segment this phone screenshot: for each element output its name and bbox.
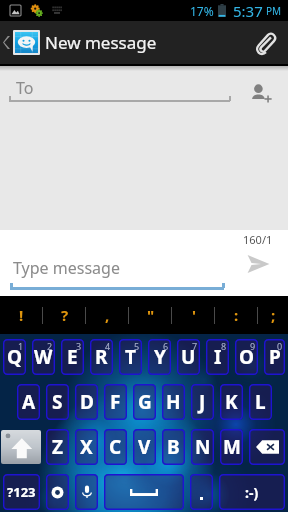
staticText: L [255,389,266,415]
staticText: E [67,344,78,370]
staticText: M [223,434,241,460]
button[interactable]: U [177,339,200,375]
staticText: :-) [245,483,259,502]
staticText: T [125,344,136,370]
button[interactable]: E [61,339,84,375]
button[interactable]: Space [104,474,184,510]
staticText: I [214,344,222,370]
button[interactable]: W [32,339,55,375]
button[interactable]: Z [46,429,69,465]
button[interactable]: Y [148,339,171,375]
button[interactable]: Attach [242,21,288,64]
button[interactable]: M [220,429,243,465]
button[interactable]: Q [3,339,26,375]
staticText: Z [52,434,64,460]
button[interactable]: : [215,296,258,334]
staticText: 9 [250,340,256,352]
button[interactable]: " [129,296,172,334]
button[interactable]: K [220,384,243,420]
button[interactable]: Send [234,244,282,284]
staticText: 0 [277,340,283,352]
staticText: ' [192,305,196,325]
staticText: O [239,344,255,370]
button[interactable]: P [264,339,285,375]
staticText: PM [266,4,282,18]
button[interactable]: R [90,339,113,375]
staticText: Y [154,344,166,370]
staticText: N [195,434,211,460]
staticText: , [105,305,110,325]
staticText: To [16,77,34,99]
staticText: 5 [134,340,140,352]
staticText: P [269,344,281,370]
button[interactable]: , [86,296,129,334]
button[interactable]: Backspace [249,429,285,465]
button[interactable]: Navigate up [0,21,40,64]
button[interactable]: ' [172,296,215,334]
staticText: F [110,389,121,415]
staticText: ; [271,305,276,325]
staticText: : [234,305,239,325]
button[interactable]: C [104,429,127,465]
staticText: 4 [105,340,111,352]
staticText: X [80,434,93,460]
button[interactable]: Emoticons [219,474,285,510]
staticText: 2 [47,340,53,352]
staticText: A [22,389,36,415]
button[interactable]: I [206,339,229,375]
staticText: ! [19,305,24,325]
staticText: V [138,434,151,460]
staticText: 6 [163,340,169,352]
staticText: B [167,434,180,460]
staticText: J [199,389,206,415]
button[interactable]: N [191,429,214,465]
staticText: 17% [190,3,214,19]
staticText: U [181,344,196,370]
button[interactable]: Shift [1,430,41,464]
button[interactable]: D [75,384,98,420]
button[interactable]: B [162,429,185,465]
staticText: 160/1 [243,232,273,247]
button[interactable] [190,474,213,510]
staticText: 1 [18,340,24,352]
staticText: H [166,389,181,415]
button[interactable]: Add recipient [240,74,280,112]
button[interactable]: S [46,384,69,420]
staticText: C [109,434,122,460]
button[interactable]: V [133,429,156,465]
staticText: S [52,389,63,415]
staticText: R [95,344,108,370]
staticText: K [225,389,238,415]
button[interactable]: Voice input [75,474,98,510]
staticText: 3 [76,340,82,352]
staticText: G [138,389,152,415]
button[interactable]: H [162,384,185,420]
button[interactable]: T [119,339,142,375]
button[interactable]: O [235,339,258,375]
button[interactable]: ? [43,296,86,334]
button[interactable]: Settings [46,474,69,510]
button[interactable]: X [75,429,98,465]
button[interactable]: Symbols [3,474,40,510]
staticText: 5:37 [233,1,263,21]
staticText: W [34,344,53,370]
button[interactable]: G [133,384,156,420]
staticText: New message [45,31,157,54]
staticText: ?123 [7,483,36,501]
staticText: Type message [13,257,120,279]
staticText: 7 [192,340,198,352]
staticText: " [147,305,155,325]
button[interactable]: F [104,384,127,420]
button[interactable]: L [249,384,272,420]
button[interactable]: ; [258,296,288,334]
staticText: 8 [221,340,227,352]
staticText: D [80,389,94,415]
button[interactable]: A [17,384,40,420]
button[interactable]: J [191,384,214,420]
button[interactable]: ! [0,296,43,334]
staticText: Q [7,344,23,370]
staticText: ? [61,305,69,325]
